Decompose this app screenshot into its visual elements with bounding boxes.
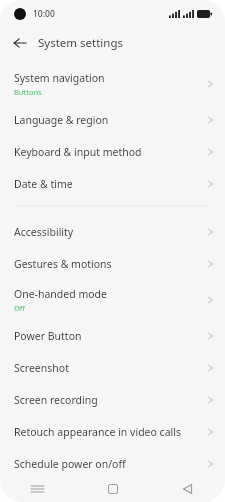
button[interactable]: Recent apps	[0, 476, 75, 502]
staticText: Date & time	[14, 177, 73, 191]
button[interactable]: Language & region	[0, 104, 225, 136]
button[interactable]: One-handed mode	[0, 280, 225, 320]
staticText: System settings	[38, 35, 124, 51]
staticText: Gestures & motions	[14, 257, 112, 271]
button[interactable]: Gestures & motions	[0, 248, 225, 280]
staticText: Language & region	[14, 113, 109, 127]
button[interactable]: System navigation	[0, 64, 225, 104]
staticText: Screen recording	[14, 393, 98, 407]
button[interactable]: Power Button	[0, 320, 225, 352]
staticText: Accessibility	[14, 225, 74, 239]
button[interactable]: Retouch appearance in video calls	[0, 416, 225, 448]
staticText: Off	[14, 303, 26, 313]
staticText: Screenshot	[14, 361, 69, 375]
button[interactable]: Screenshot	[0, 352, 225, 384]
staticText: Retouch appearance in video calls	[14, 425, 181, 439]
staticText: Schedule power on/off	[14, 457, 126, 471]
button[interactable]: Back	[8, 31, 32, 55]
staticText: 10:00	[33, 8, 55, 20]
button[interactable]: Screen recording	[0, 384, 225, 416]
staticText: Keyboard & input method	[14, 145, 142, 159]
staticText: System navigation	[14, 71, 105, 85]
button[interactable]: Schedule power on/off	[0, 448, 225, 480]
button[interactable]: Back	[150, 476, 225, 502]
button[interactable]: Home	[75, 476, 150, 502]
button[interactable]: Keyboard & input method	[0, 136, 225, 168]
button[interactable]: Date & time	[0, 168, 225, 200]
staticText: Buttons	[14, 87, 42, 97]
staticText: One-handed mode	[14, 287, 107, 301]
button[interactable]: Accessibility	[0, 216, 225, 248]
staticText: Power Button	[14, 329, 82, 343]
